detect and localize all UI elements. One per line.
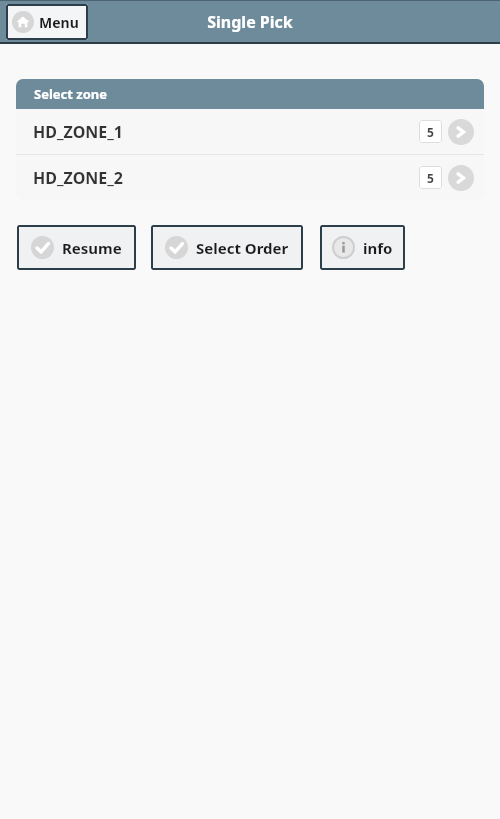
staticText: Menu — [39, 13, 79, 32]
button[interactable]: HD_ZONE_1 — [16, 109, 484, 154]
staticText: info — [363, 238, 393, 258]
button[interactable]: HD_ZONE_2 — [16, 155, 484, 200]
staticText: HD_ZONE_2 — [33, 167, 123, 189]
staticText: Resume — [62, 238, 122, 258]
button[interactable]: Resume — [17, 225, 136, 270]
button[interactable]: info — [320, 225, 405, 270]
staticText: 5 — [427, 124, 434, 140]
button[interactable]: Select Order — [151, 225, 303, 270]
button[interactable]: Menu — [6, 4, 88, 40]
other: Open zone — [448, 165, 474, 191]
other: Open zone — [448, 119, 474, 145]
staticText: 5 — [427, 170, 434, 186]
staticText: Select Order — [196, 238, 289, 258]
staticText: Single Pick — [207, 11, 293, 33]
staticText: HD_ZONE_1 — [33, 121, 123, 143]
staticText: Select zone — [34, 85, 108, 103]
